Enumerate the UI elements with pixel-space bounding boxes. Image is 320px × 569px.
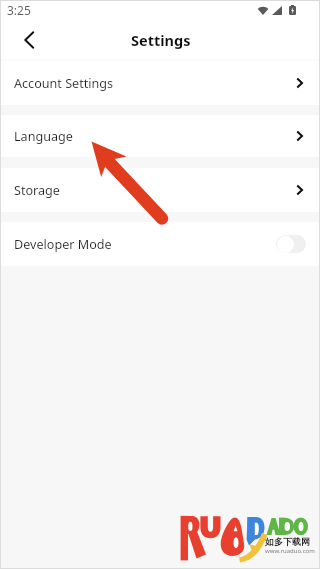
button[interactable]: Language: [0, 115, 320, 157]
staticText: Storage: [14, 182, 60, 199]
staticText: Language: [14, 128, 73, 145]
button[interactable]: Account Settings: [0, 61, 320, 105]
staticText: Developer Mode: [14, 236, 112, 253]
staticText: 如多下载网: [265, 536, 310, 547]
button[interactable]: Developer Mode toggle: [276, 235, 306, 253]
staticText: Account Settings: [14, 75, 114, 92]
staticText: Settings: [131, 30, 191, 50]
button[interactable]: Back: [19, 28, 37, 52]
button[interactable]: Storage: [0, 168, 320, 212]
staticText: 3:25: [7, 2, 31, 18]
staticText: www.ruaduo.com: [265, 547, 315, 555]
